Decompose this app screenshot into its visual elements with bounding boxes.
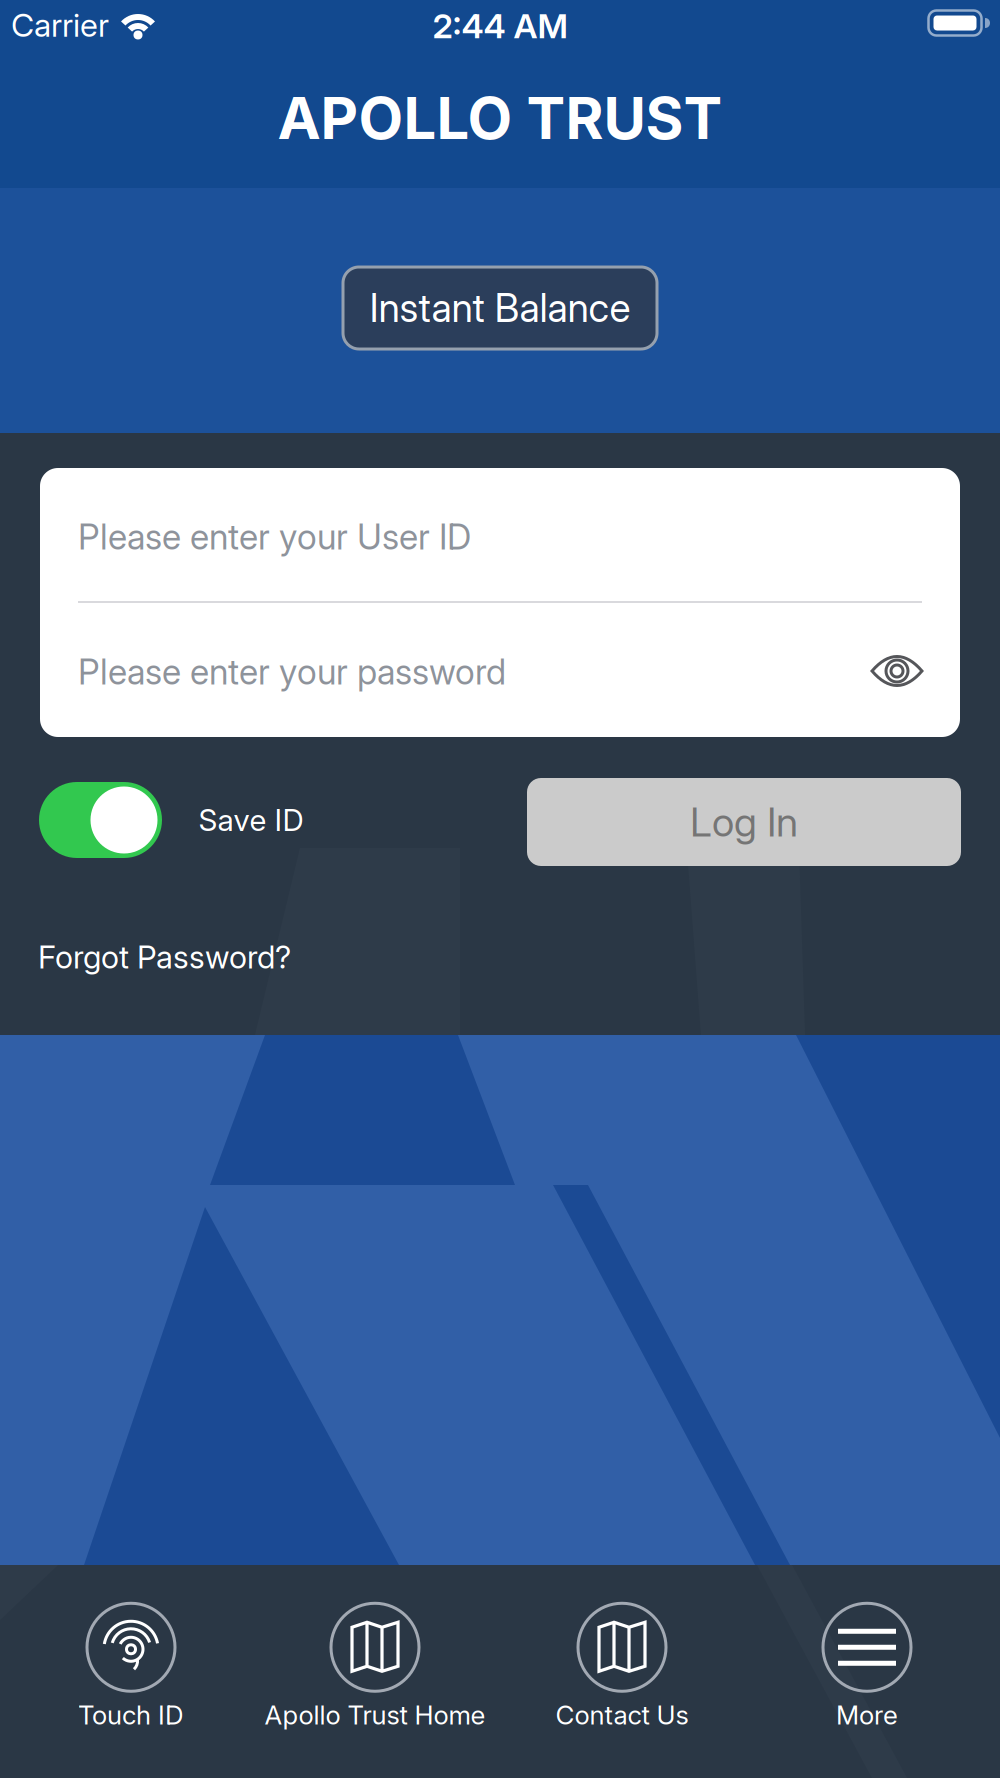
button[interactable]: Apollo Trust Home bbox=[264, 1603, 485, 1731]
staticText: More bbox=[836, 1699, 898, 1731]
button[interactable]: Contact Us bbox=[555, 1603, 688, 1731]
button[interactable]: Please enter your password bbox=[78, 622, 838, 722]
button[interactable]: Touch ID bbox=[78, 1603, 184, 1731]
staticText: Carrier bbox=[11, 6, 109, 44]
staticText: Instant Balance bbox=[369, 285, 630, 331]
button[interactable]: Log In bbox=[527, 778, 961, 866]
staticText: 2:44 AM bbox=[432, 5, 567, 46]
button[interactable]: More bbox=[823, 1603, 911, 1731]
staticText: Contact Us bbox=[555, 1699, 688, 1731]
staticText: Please enter your User ID bbox=[78, 516, 471, 558]
staticText: Please enter your password bbox=[78, 651, 506, 693]
staticText: Save ID bbox=[198, 802, 303, 838]
staticText: APOLLO TRUST bbox=[277, 83, 722, 153]
staticText: Apollo Trust Home bbox=[264, 1699, 485, 1731]
button[interactable]: Please enter your User ID bbox=[78, 487, 922, 587]
staticText: Touch ID bbox=[78, 1699, 184, 1731]
staticText: Log In bbox=[690, 798, 798, 846]
button[interactable]: Show password bbox=[865, 639, 929, 703]
staticText: Forgot Password? bbox=[38, 938, 291, 976]
button[interactable]: Save ID bbox=[39, 782, 162, 858]
button[interactable]: Forgot Password? bbox=[38, 927, 438, 987]
button[interactable]: Instant Balance bbox=[343, 267, 657, 349]
